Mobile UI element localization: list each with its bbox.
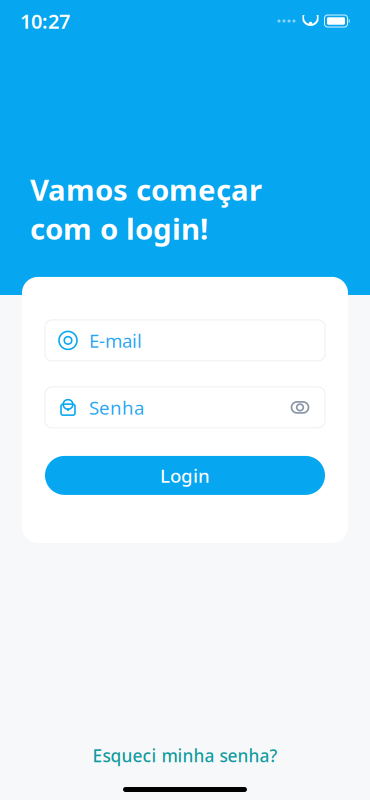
staticText: Esqueci minha senha? [92, 744, 277, 767]
button[interactable]: Esqueci minha senha? [78, 738, 291, 773]
button[interactable]: Mostrar senha [289, 396, 325, 418]
staticText: Vamos começar com o login! [30, 170, 262, 248]
staticText: E-mail [89, 328, 142, 353]
staticText: 10:27 [20, 8, 70, 34]
staticText: Senha [89, 395, 144, 420]
button[interactable]: Login [45, 456, 325, 495]
staticText: Login [160, 463, 210, 488]
